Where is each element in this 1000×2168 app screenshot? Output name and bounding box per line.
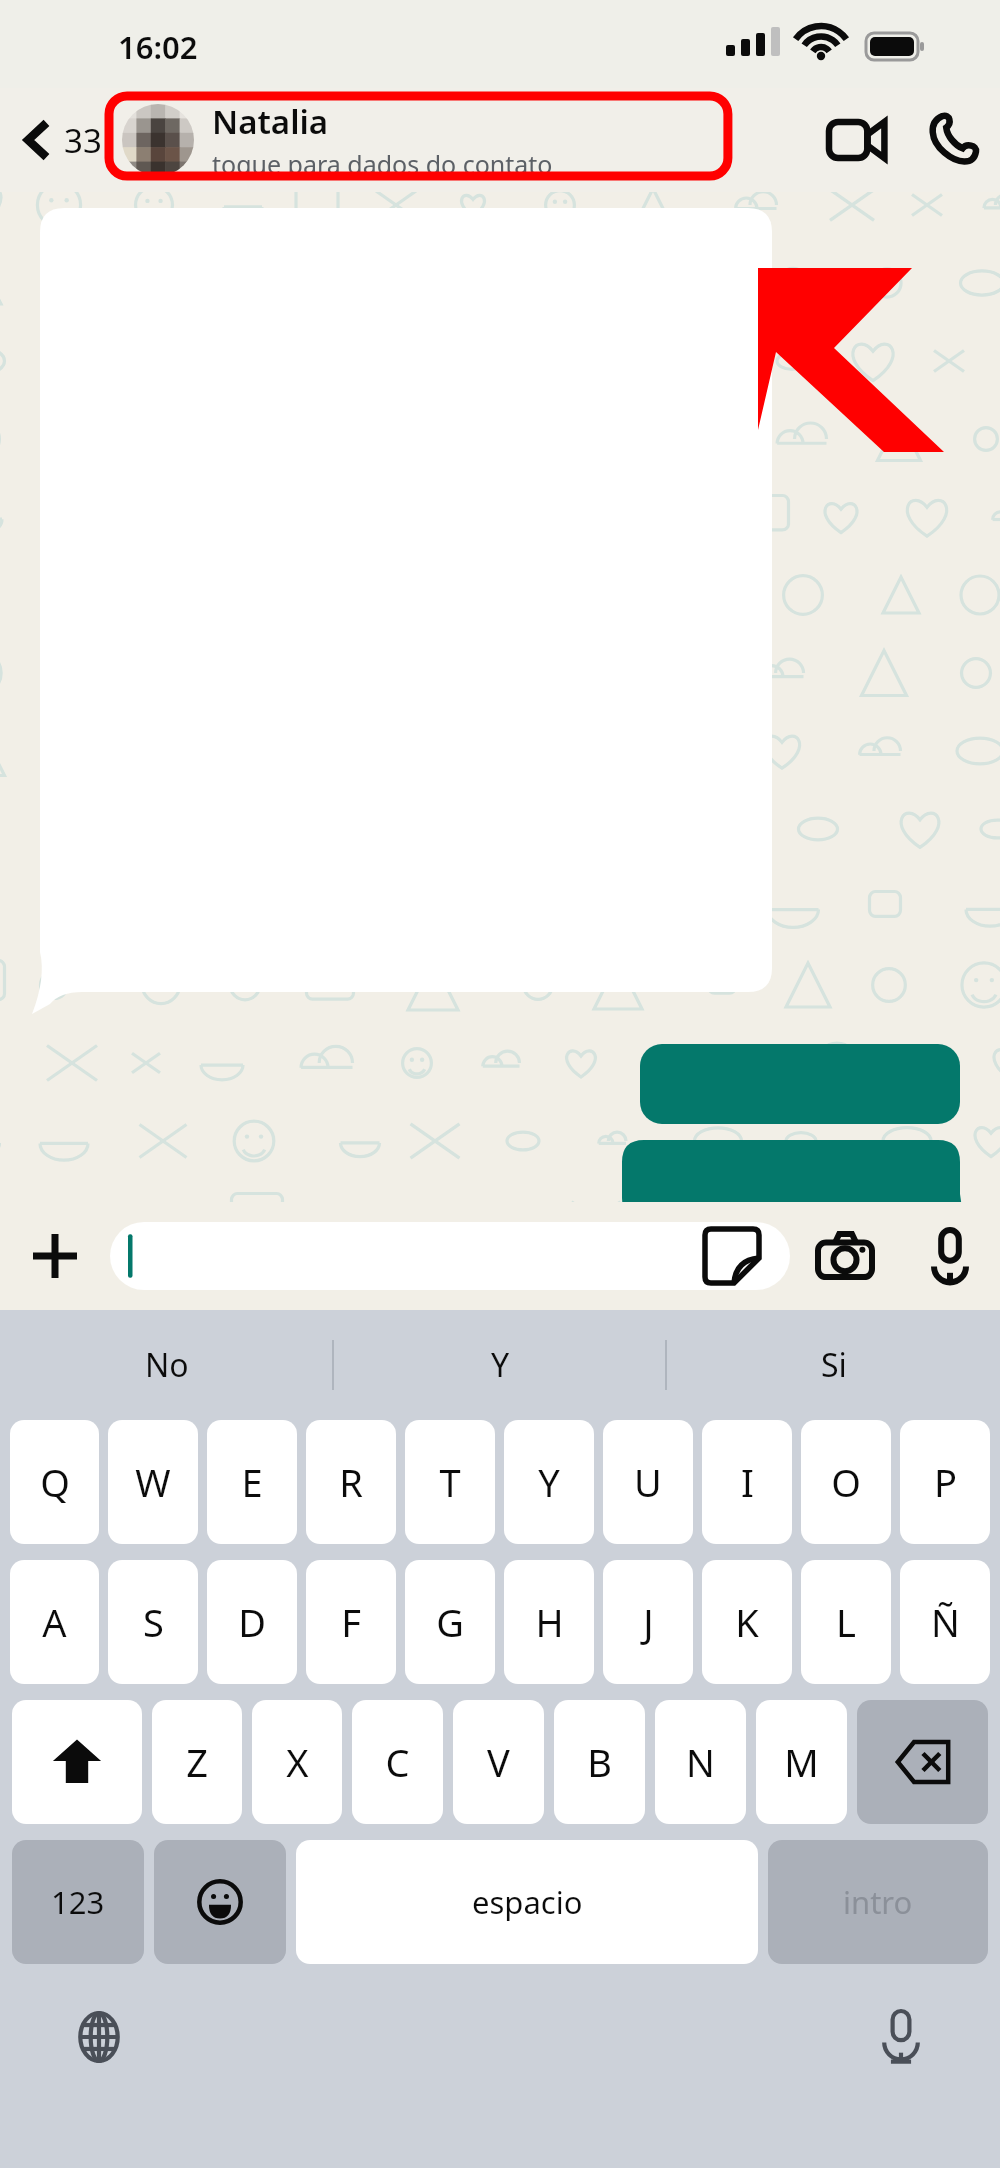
staticText: Natalia [212, 99, 329, 144]
button[interactable]: B [554, 1700, 645, 1824]
button[interactable]: V [453, 1700, 544, 1824]
button[interactable]: Natalia [122, 88, 808, 192]
staticText: No [145, 1343, 189, 1387]
staticText: Y [538, 1456, 560, 1508]
staticText: E [241, 1456, 263, 1508]
button[interactable]: W [108, 1420, 198, 1544]
button[interactable]: P [900, 1420, 990, 1544]
staticText: R [339, 1456, 363, 1508]
button[interactable]: U [603, 1420, 693, 1544]
button[interactable]: Dictation [858, 1994, 944, 2080]
button[interactable]: H [504, 1560, 594, 1684]
staticText: F [341, 1596, 361, 1648]
staticText: X [286, 1736, 309, 1788]
button[interactable]: J [603, 1560, 693, 1684]
button[interactable]: F [306, 1560, 396, 1684]
button[interactable]: Emoji [154, 1840, 286, 1964]
button[interactable]: X [252, 1700, 342, 1824]
button[interactable]: Ñ [900, 1560, 990, 1684]
staticText: U [634, 1456, 662, 1508]
button[interactable]: M [756, 1700, 847, 1824]
button[interactable]: Attach [0, 1202, 110, 1310]
staticText: D [238, 1596, 266, 1648]
button[interactable]: espacio [296, 1840, 758, 1964]
staticText: L [836, 1596, 856, 1648]
staticText: V [487, 1736, 510, 1788]
staticText: Q [40, 1456, 70, 1508]
button[interactable]: Backspace [857, 1700, 988, 1824]
staticText: J [643, 1596, 654, 1648]
staticText: S [143, 1596, 164, 1648]
button[interactable]: Voice call [904, 88, 1000, 192]
button[interactable]: Voice message [900, 1202, 1000, 1310]
staticText: T [439, 1456, 461, 1508]
button[interactable]: E [207, 1420, 297, 1544]
button[interactable]: S [108, 1560, 198, 1684]
button[interactable]: O [801, 1420, 891, 1544]
button[interactable]: N [655, 1700, 746, 1824]
staticText: W [135, 1456, 171, 1508]
button[interactable]: No [0, 1310, 334, 1420]
staticText: Ñ [931, 1596, 960, 1648]
staticText: O [831, 1456, 861, 1508]
button[interactable]: Y [504, 1420, 594, 1544]
staticText: M [784, 1736, 819, 1788]
staticText: G [436, 1596, 464, 1648]
button[interactable] [110, 1222, 790, 1290]
button[interactable]: I [702, 1420, 792, 1544]
button[interactable]: Y [334, 1310, 667, 1420]
staticText: I [741, 1456, 754, 1508]
staticText: intro [843, 1881, 913, 1923]
button[interactable]: Camera [790, 1202, 900, 1310]
staticText: toque para dados do contato [212, 147, 553, 181]
staticText: B [587, 1736, 612, 1788]
button[interactable]: K [702, 1560, 792, 1684]
button[interactable]: L [801, 1560, 891, 1684]
button[interactable]: T [405, 1420, 495, 1544]
staticText: Si [821, 1343, 847, 1387]
button[interactable]: C [352, 1700, 443, 1824]
button[interactable]: 123 [12, 1840, 144, 1964]
staticText: H [535, 1596, 564, 1648]
staticText: 16:02 [118, 26, 198, 68]
button[interactable]: D [207, 1560, 297, 1684]
button[interactable]: Back [0, 117, 106, 163]
staticText: K [735, 1596, 759, 1648]
button[interactable]: G [405, 1560, 495, 1684]
button[interactable]: intro [768, 1840, 988, 1964]
button[interactable]: A [10, 1560, 99, 1684]
button[interactable]: Si [667, 1310, 1000, 1420]
button[interactable]: Shift [12, 1700, 142, 1824]
button[interactable]: Q [10, 1420, 99, 1544]
button[interactable]: R [306, 1420, 396, 1544]
staticText: Z [186, 1736, 208, 1788]
staticText: Y [491, 1343, 510, 1387]
staticText: 123 [51, 1881, 105, 1923]
staticText: 33 [64, 118, 102, 163]
button[interactable]: Z [152, 1700, 242, 1824]
staticText: C [385, 1736, 410, 1788]
staticText: N [686, 1736, 715, 1788]
button[interactable]: Change keyboard [56, 1994, 142, 2080]
staticText: P [934, 1456, 957, 1508]
staticText: A [42, 1596, 67, 1648]
staticText: espacio [472, 1881, 583, 1923]
button[interactable]: Video call [808, 88, 904, 192]
